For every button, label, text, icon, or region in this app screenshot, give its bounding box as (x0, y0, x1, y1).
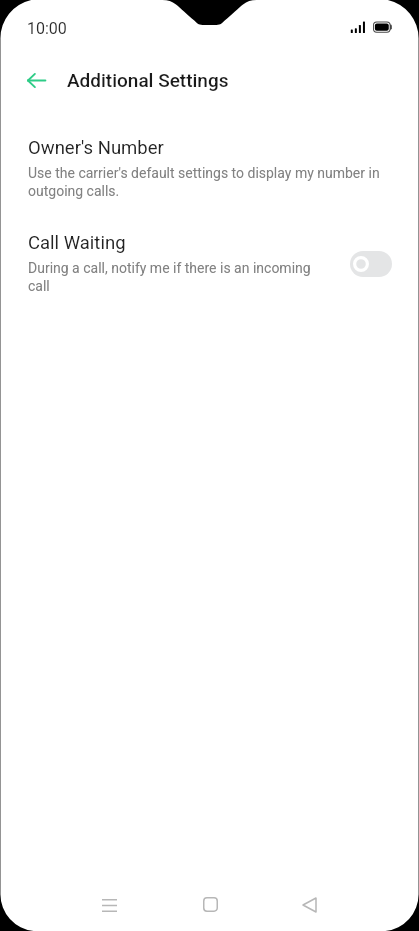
button[interactable]: Call waiting toggle (350, 251, 392, 277)
button[interactable]: Recent apps (79, 887, 139, 923)
button[interactable]: Back (18, 62, 54, 98)
staticText: 10:00 (27, 19, 67, 38)
staticText: Use the carrier's default settings to di… (28, 165, 382, 200)
staticText: Additional Settings (67, 69, 229, 91)
staticText: During a call, notify me if there is an … (28, 260, 311, 295)
button[interactable]: Owner's Number (0, 137, 419, 200)
staticText: Owner's Number (28, 137, 164, 159)
staticText: Call Waiting (28, 232, 126, 254)
button[interactable]: Call Waiting (0, 232, 419, 295)
button[interactable]: Home (180, 886, 240, 922)
button[interactable]: Back (279, 887, 339, 923)
